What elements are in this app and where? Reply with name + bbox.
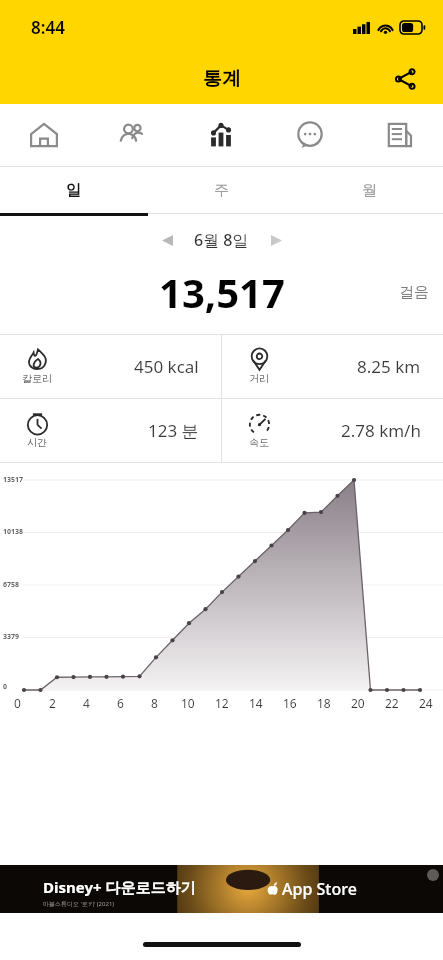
staticText: 22 — [385, 695, 399, 711]
staticText: 마블스튜디오 '로키' (2021) — [43, 900, 115, 908]
button[interactable]: Friends — [88, 104, 176, 166]
staticText: 6월 8일 — [194, 229, 249, 251]
button[interactable]: Share — [387, 61, 423, 97]
staticText: 시간 — [27, 436, 47, 449]
staticText: 123 분 — [148, 419, 199, 442]
staticText: 3379 — [3, 632, 20, 642]
staticText: 450 kcal — [134, 355, 199, 378]
staticText: 6758 — [3, 580, 20, 590]
button[interactable]: Feed — [354, 104, 443, 166]
staticText: 걸음 — [399, 283, 429, 302]
staticText: 일 — [66, 181, 81, 200]
staticText: 18 — [317, 695, 331, 711]
staticText: 칼로리 — [22, 372, 52, 385]
staticText: 월 — [362, 181, 377, 200]
button[interactable]: Disney+ 다운로드하기 — [0, 865, 443, 913]
staticText: 8 — [151, 695, 158, 711]
staticText: 8.25 km — [357, 355, 421, 378]
button[interactable]: Previous day — [150, 223, 184, 257]
button[interactable]: Home — [0, 104, 88, 166]
staticText: 2.78 km/h — [341, 419, 421, 442]
button[interactable]: Next day — [259, 223, 293, 257]
staticText: 2 — [49, 695, 56, 711]
staticText: 24 — [419, 695, 433, 711]
staticText: 16 — [283, 695, 297, 711]
staticText: 거리 — [249, 372, 269, 385]
staticText: 13,517 — [159, 265, 285, 319]
staticText: 8:44 — [31, 16, 65, 39]
button[interactable]: 월 — [295, 167, 443, 213]
staticText: 0 — [14, 695, 21, 711]
button[interactable]: Statistics — [176, 104, 265, 166]
staticText: 속도 — [249, 436, 269, 449]
button[interactable]: 일 — [0, 167, 147, 213]
staticText: Disney+ 다운로드하기 — [43, 877, 196, 897]
staticText: 20 — [351, 695, 365, 711]
button[interactable]: 시간 — [0, 399, 221, 462]
staticText: 14 — [249, 695, 263, 711]
staticText: 6 — [117, 695, 124, 711]
staticText: 10 — [181, 695, 195, 711]
button[interactable]: 속도 — [222, 399, 443, 462]
staticText: 13517 — [3, 475, 24, 485]
staticText: App Store — [282, 878, 357, 900]
staticText: 10138 — [3, 527, 24, 537]
button[interactable]: 칼로리 — [0, 335, 221, 398]
staticText: 12 — [215, 695, 229, 711]
button[interactable]: Chat — [265, 104, 354, 166]
staticText: 4 — [83, 695, 90, 711]
staticText: 통계 — [203, 67, 241, 91]
button[interactable]: 거리 — [222, 335, 443, 398]
button[interactable]: 주 — [147, 167, 295, 213]
staticText: 0 — [3, 682, 8, 692]
staticText: 주 — [214, 181, 229, 200]
